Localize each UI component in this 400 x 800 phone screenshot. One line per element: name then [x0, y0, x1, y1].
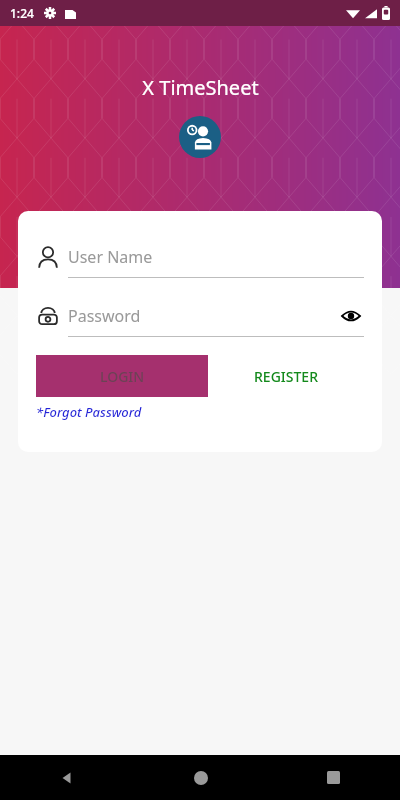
button[interactable]: Password	[36, 296, 364, 336]
button[interactable]: *Forgot Password	[36, 403, 142, 421]
staticText: *Forgot Password	[36, 403, 142, 421]
button[interactable]: REGISTER	[208, 355, 364, 397]
button[interactable]: Show password	[338, 303, 364, 329]
staticText: REGISTER	[254, 367, 318, 386]
staticText: Password	[68, 305, 338, 327]
staticText: LOGIN	[100, 367, 145, 386]
button[interactable]: User Name	[36, 237, 364, 277]
button[interactable]: Home	[134, 755, 267, 800]
staticText: X TimeSheet	[142, 74, 259, 101]
button[interactable]: Recent apps	[267, 755, 400, 800]
other: App logo	[179, 116, 221, 158]
button[interactable]: Back	[0, 755, 134, 800]
staticText: 1:24	[10, 5, 34, 21]
staticText: User Name	[68, 246, 153, 268]
button[interactable]: LOGIN	[36, 355, 208, 397]
